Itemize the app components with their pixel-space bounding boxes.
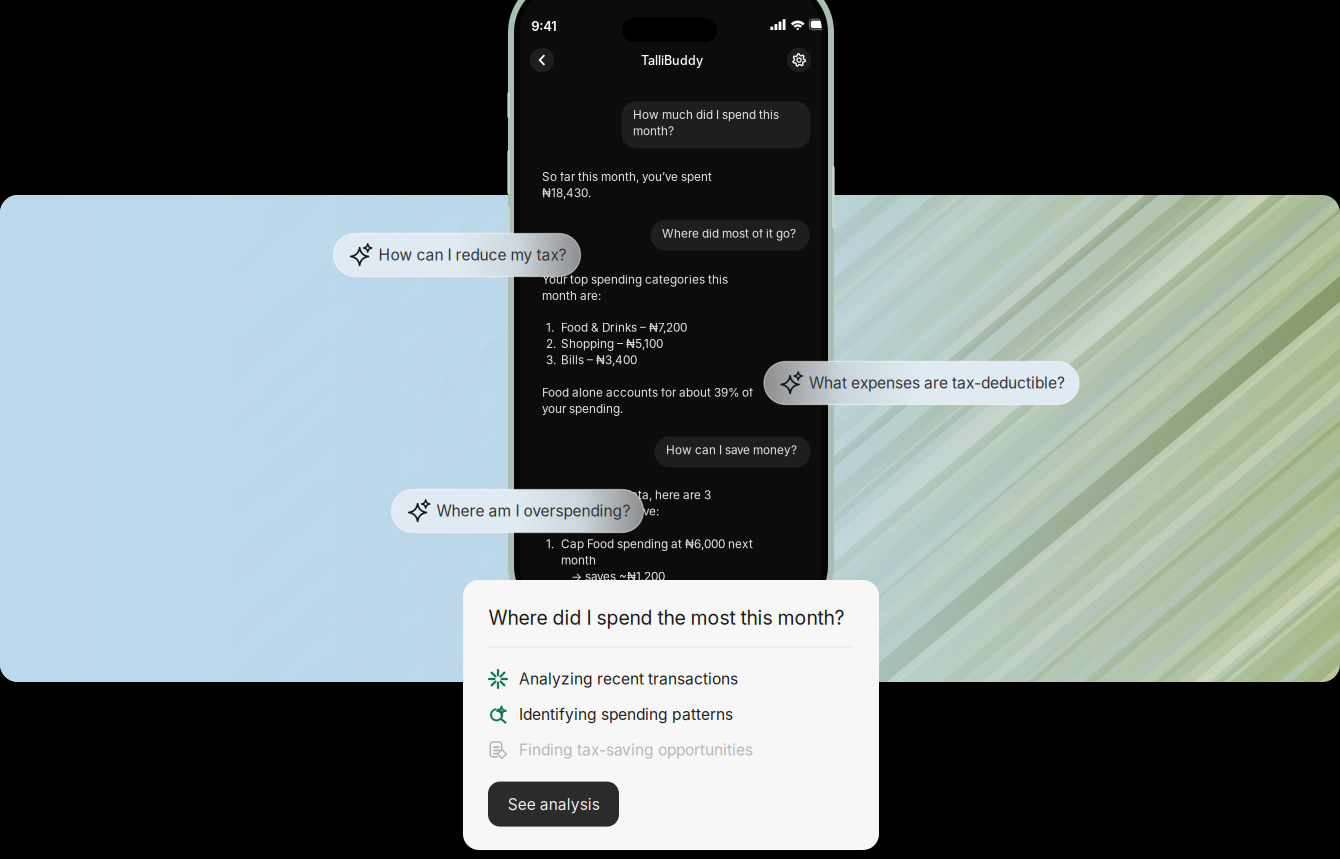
- staticText: ₦18,430.: [542, 186, 591, 200]
- staticText: Where did I spend the most this month?: [488, 606, 844, 629]
- staticText: 1.: [546, 537, 554, 551]
- button[interactable]: Settings: [787, 48, 811, 72]
- staticText: How much did I spend this: [633, 108, 779, 122]
- button[interactable]: Back: [530, 48, 554, 72]
- staticText: 9:41: [531, 18, 556, 34]
- button[interactable]: How can I reduce my tax?: [333, 233, 580, 276]
- staticText: Where did most of it go?: [662, 226, 796, 240]
- staticText: month?: [633, 124, 674, 138]
- staticText: your spending.: [542, 402, 623, 416]
- button[interactable]: Where am I overspending?: [391, 489, 643, 532]
- staticText: month: [561, 553, 596, 567]
- staticText: Bills – ₦3,400: [561, 353, 637, 367]
- staticText: → saves ~₦1,200: [571, 569, 665, 584]
- staticText: ways you could save:: [542, 504, 659, 518]
- staticText: What expenses are tax-deductible?: [809, 373, 1065, 392]
- staticText: month are:: [542, 289, 601, 303]
- staticText: Cap Food spending at ₦6,000 next: [561, 537, 753, 551]
- staticText: 3.: [546, 353, 556, 367]
- staticText: Identifying spending patterns: [519, 705, 733, 724]
- staticText: Where am I overspending?: [437, 501, 631, 520]
- staticText: 2.: [546, 337, 556, 351]
- staticText: Shopping – ₦5,100: [561, 337, 663, 351]
- staticText: TalliBuddy: [641, 53, 703, 68]
- staticText: Analyzing recent transactions: [519, 669, 738, 688]
- staticText: How can I reduce my tax?: [379, 245, 567, 264]
- staticText: How can I save money?: [666, 443, 797, 457]
- staticText: Food & Drinks – ₦7,200: [561, 320, 687, 335]
- staticText: Based on your data, here are 3: [542, 488, 711, 502]
- button[interactable]: What expenses are tax-deductible?: [764, 361, 1079, 404]
- staticText: 1.: [546, 320, 554, 335]
- staticText: See analysis: [508, 795, 600, 814]
- staticText: Food alone accounts for about 39% of: [542, 385, 753, 400]
- staticText: Your top spending categories this: [542, 272, 728, 287]
- button[interactable]: See analysis: [488, 782, 619, 827]
- staticText: So far this month, you’ve spent: [542, 170, 712, 184]
- staticText: Finding tax-saving opportunities: [519, 740, 753, 759]
